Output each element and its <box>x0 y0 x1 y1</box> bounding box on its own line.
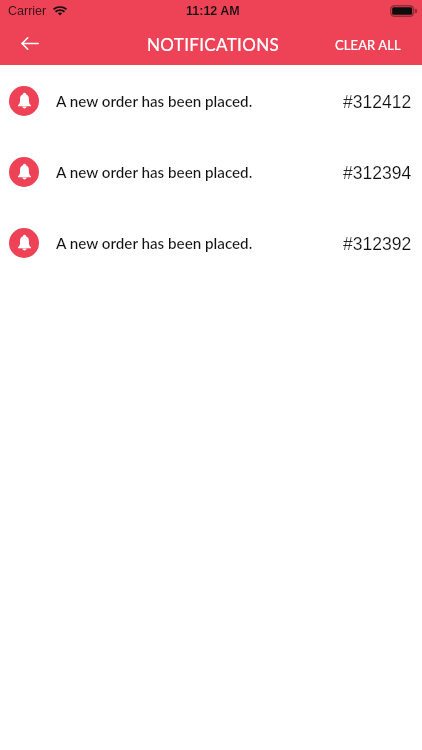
staticText: A new order has been placed. <box>56 163 253 181</box>
staticText: A new order has been placed. <box>56 234 253 252</box>
staticText: CLEAR ALL <box>335 37 401 53</box>
staticText: #312394 <box>343 163 412 183</box>
button[interactable]: CLEAR ALL <box>325 31 422 59</box>
staticText: 11:12 AM <box>186 4 240 18</box>
staticText: NOTIFICATIONS <box>147 34 280 54</box>
staticText: Carrier <box>8 4 47 18</box>
button[interactable]: A new order has been placed. <box>0 207 422 278</box>
staticText: #312412 <box>343 92 412 112</box>
button[interactable]: Back <box>13 27 45 59</box>
button[interactable]: A new order has been placed. <box>0 136 422 207</box>
staticText: A new order has been placed. <box>56 92 253 110</box>
button[interactable]: A new order has been placed. <box>0 65 422 136</box>
staticText: #312392 <box>343 234 412 254</box>
